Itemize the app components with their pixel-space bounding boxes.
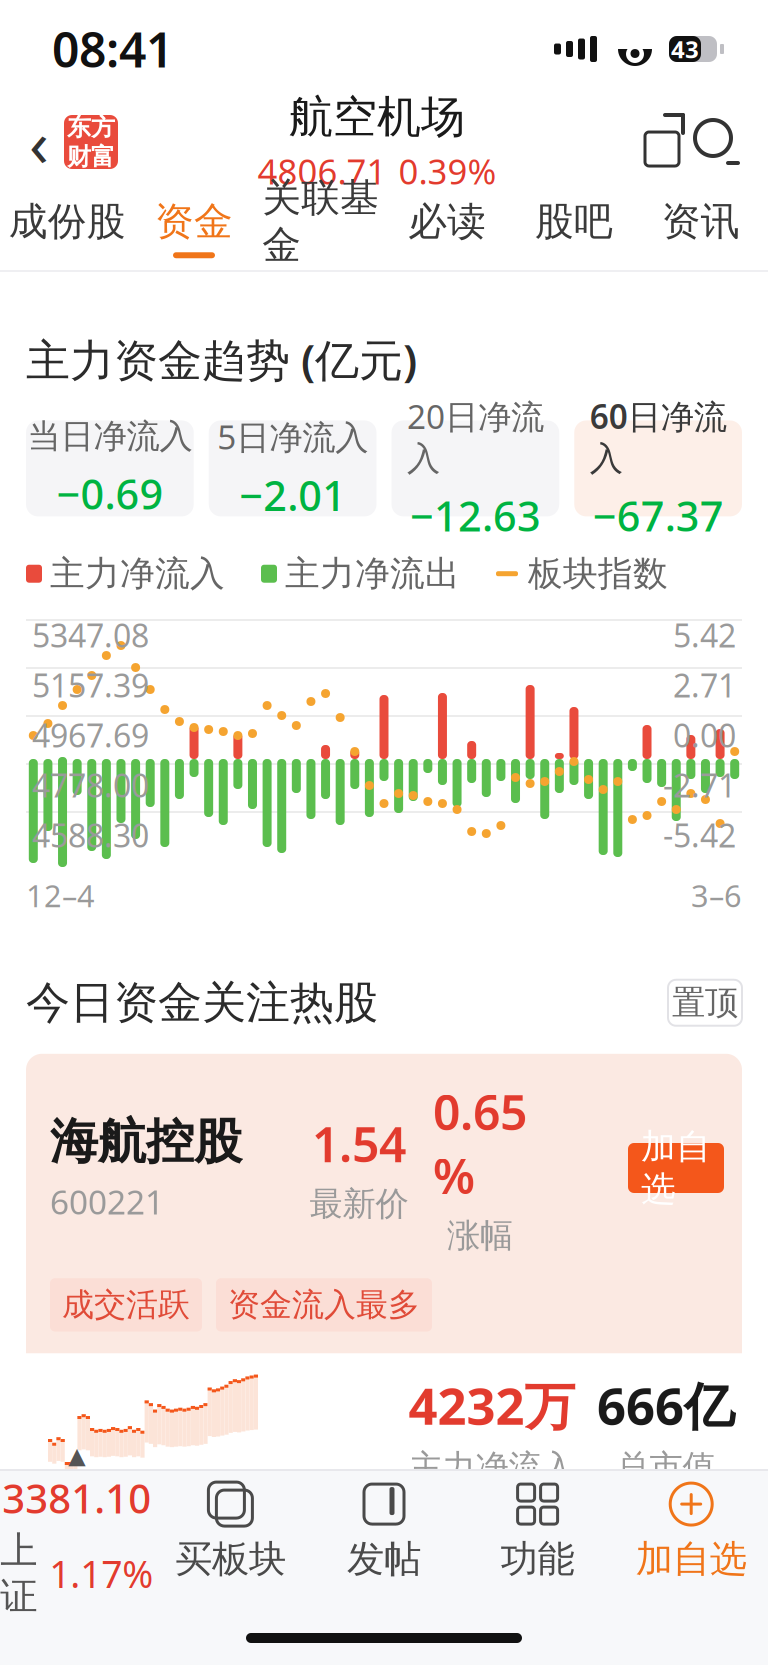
button[interactable]: 当日净流入	[26, 420, 194, 516]
staticText: −67.37	[593, 488, 724, 543]
staticText: 资金流入最多	[228, 1285, 420, 1324]
staticText: 666亿	[597, 1371, 735, 1439]
staticText: 4967.69	[32, 714, 149, 756]
staticText: −12.63	[410, 488, 541, 543]
staticText: 主力净流出	[285, 552, 460, 595]
staticText: 必读	[408, 198, 486, 245]
button[interactable]: 发帖	[307, 1471, 461, 1591]
button[interactable]: 成份股	[4, 186, 131, 270]
button[interactable]: 60日净流入	[574, 420, 742, 516]
button[interactable]: 买板块	[154, 1471, 307, 1591]
staticText: 4806.71	[257, 148, 386, 194]
button[interactable]: 股吧	[511, 186, 637, 270]
button[interactable]: East Money home	[64, 115, 118, 169]
staticText: 1.17%	[49, 1549, 153, 1598]
button[interactable]: 加自选	[614, 1471, 768, 1591]
staticText: 3–6	[691, 875, 742, 916]
staticText: −2.01	[239, 468, 346, 522]
staticText: 0.00	[673, 714, 736, 756]
staticText: 主力净流入	[409, 1447, 574, 1488]
staticText: 12–4	[26, 875, 95, 916]
button[interactable]: 20日净流入	[391, 420, 559, 516]
staticText: 东方	[67, 112, 115, 142]
staticText: 600221	[50, 1179, 164, 1224]
staticText: 涨幅	[447, 1215, 513, 1256]
staticText: 5.42	[673, 614, 736, 656]
staticText: 60日净流入	[590, 394, 727, 479]
staticText: -2.71	[663, 764, 736, 806]
staticText: 加自选	[636, 1536, 747, 1582]
staticText: −0.69	[56, 466, 163, 521]
staticText: 5日净流入	[217, 414, 368, 459]
button[interactable]: Back	[14, 110, 64, 174]
button[interactable]: 5日净流入	[209, 420, 377, 516]
staticText: 股吧	[535, 198, 613, 245]
staticText: 4588.30	[32, 814, 149, 856]
staticText: ▲	[68, 1443, 85, 1468]
staticText: 3381.10	[2, 1471, 151, 1524]
staticText: 最新价	[309, 1183, 408, 1224]
staticText: 板块指数	[528, 552, 668, 595]
staticText: 关联基金	[262, 174, 379, 269]
staticText: 0.65%	[433, 1080, 527, 1207]
button[interactable]: Share	[636, 113, 688, 171]
staticText: 财富	[67, 142, 115, 171]
staticText: 总市值	[616, 1447, 715, 1488]
staticText: 资金	[155, 198, 233, 245]
staticText: 资讯	[662, 198, 740, 245]
staticText: -5.42	[663, 814, 736, 856]
staticText: 当日净流入	[27, 416, 192, 457]
staticText: 航空机场	[289, 90, 465, 144]
staticText: 2.71	[673, 664, 736, 706]
staticText: 主力净流入	[50, 552, 225, 595]
staticText: 加自选	[641, 1125, 711, 1211]
staticText: 今日资金关注热股	[26, 976, 378, 1030]
staticText: 买板块	[175, 1536, 286, 1582]
staticText: 功能	[501, 1536, 575, 1582]
staticText: 近3日主力净流入8504万	[72, 1599, 494, 1650]
button[interactable]: 资金	[131, 186, 257, 270]
staticText: 4232万	[408, 1371, 575, 1439]
button[interactable]: 海航控股	[26, 1054, 742, 1506]
staticText: 资金看点	[50, 1532, 206, 1579]
staticText: 海航控股	[50, 1112, 242, 1171]
staticText: 成份股	[9, 198, 126, 245]
staticText: 成交活跃	[62, 1285, 190, 1324]
button[interactable]: 加自选	[628, 1143, 724, 1193]
staticText: 1.54	[312, 1112, 406, 1175]
button[interactable]: 必读	[384, 186, 511, 270]
staticText: 20日净流入	[407, 394, 544, 479]
button[interactable]: ▲	[0, 1471, 154, 1591]
staticText: ‹	[29, 99, 49, 184]
staticText: 08:41	[52, 17, 173, 81]
staticText: 发帖	[347, 1536, 421, 1582]
staticText: 主力资金趋势 (亿元)	[26, 330, 417, 388]
staticText: 5347.08	[32, 614, 149, 656]
button[interactable]: 关联基金	[257, 186, 384, 270]
staticText: 43	[671, 33, 699, 65]
staticText: 5157.39	[32, 664, 149, 706]
button[interactable]: 置顶	[668, 980, 742, 1026]
staticText: 4778.00	[32, 764, 149, 806]
button[interactable]: Search	[688, 113, 746, 171]
staticText: 上证	[0, 1528, 37, 1619]
button[interactable]: 资讯	[637, 186, 764, 270]
button[interactable]: 功能	[461, 1471, 614, 1591]
staticText: 0.39%	[398, 148, 496, 194]
staticText: 置顶	[672, 982, 738, 1023]
